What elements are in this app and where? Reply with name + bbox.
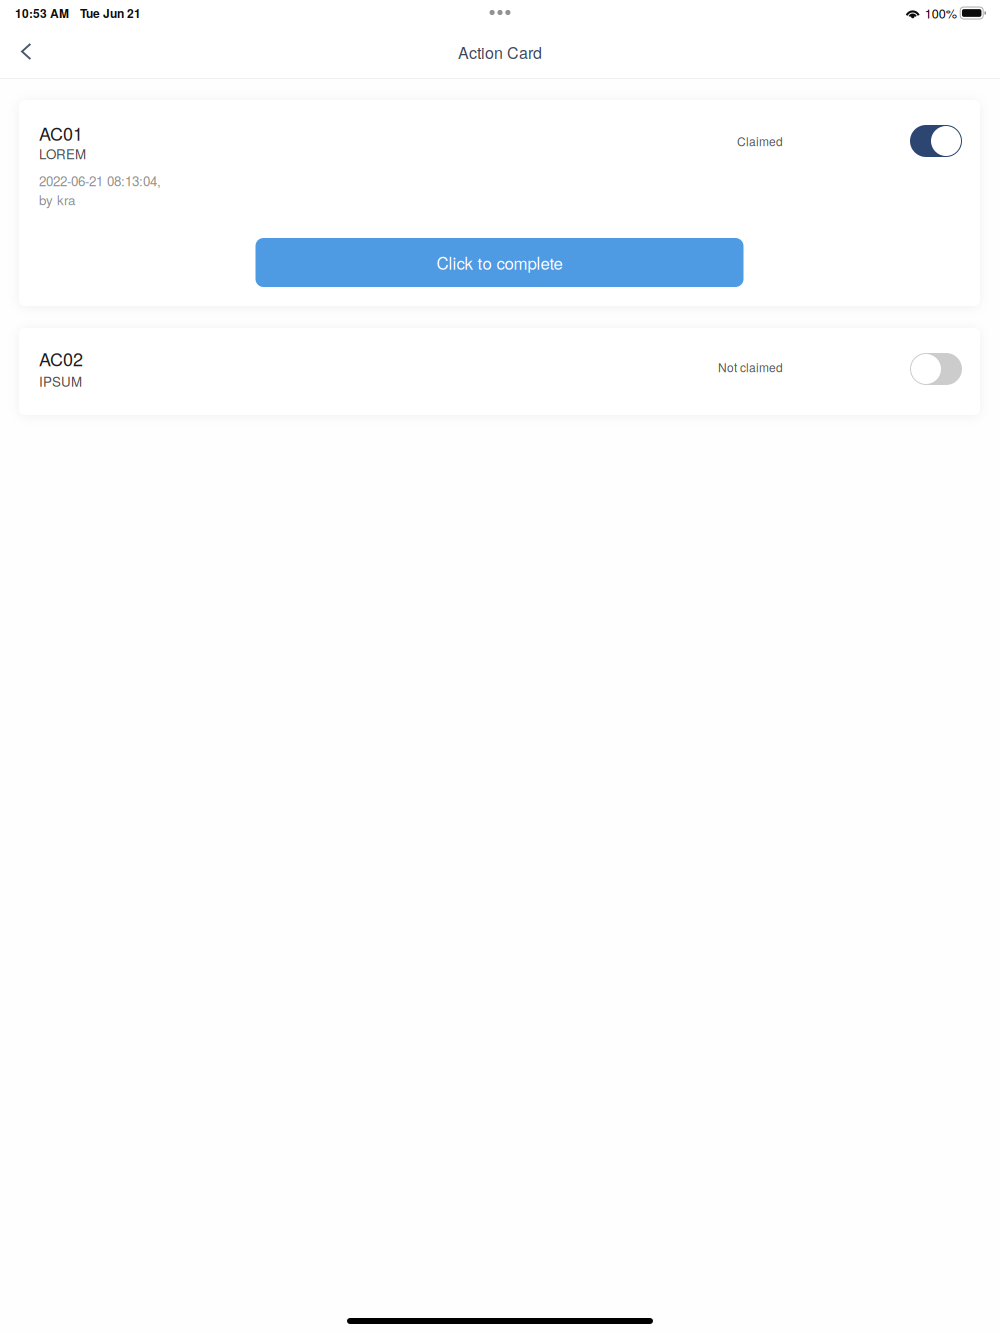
staticText: AC02 [39,346,83,371]
staticText: Click to complete [436,250,562,275]
button[interactable]: Not claimed [910,353,962,385]
staticText: AC01 [39,120,83,146]
button[interactable]: Back [0,28,50,76]
staticText: 10:53 AM [15,4,69,22]
staticText: Not claimed [718,358,783,376]
staticText: 100% [925,4,957,22]
staticText: Tue Jun 21 [80,4,141,22]
staticText: Claimed [737,132,783,150]
staticText: by kra [39,190,75,209]
staticText: Action Card [458,40,542,63]
staticText: LOREM [39,144,86,163]
staticText: 2022-06-21 08:13:04, [39,171,161,190]
button[interactable]: Claimed [910,125,962,157]
staticText: IPSUM [39,371,82,391]
button[interactable]: Click to complete [255,238,743,287]
